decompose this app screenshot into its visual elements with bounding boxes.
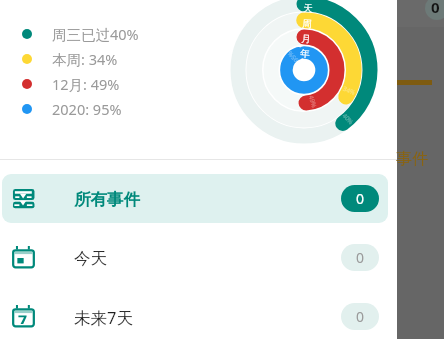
staticText: 0 [356,189,365,208]
staticText: 所有事件 [74,189,140,210]
staticText: 0 [356,307,365,326]
button[interactable]: 今天 [2,233,388,282]
staticText: 本周: 34% [52,49,118,69]
staticText: 未来7天 [74,306,133,329]
staticText: 周三已过40% [52,24,139,44]
staticText: 事件 [396,149,428,169]
staticText: 0 [356,248,365,267]
staticText: 12月: 49% [52,74,120,94]
staticText: 今天 [74,248,107,269]
button[interactable]: 未来7天 [2,292,388,339]
staticText: 2020: 95% [52,99,122,119]
button[interactable]: 所有事件 [2,174,388,223]
staticText: 0 [431,0,440,17]
